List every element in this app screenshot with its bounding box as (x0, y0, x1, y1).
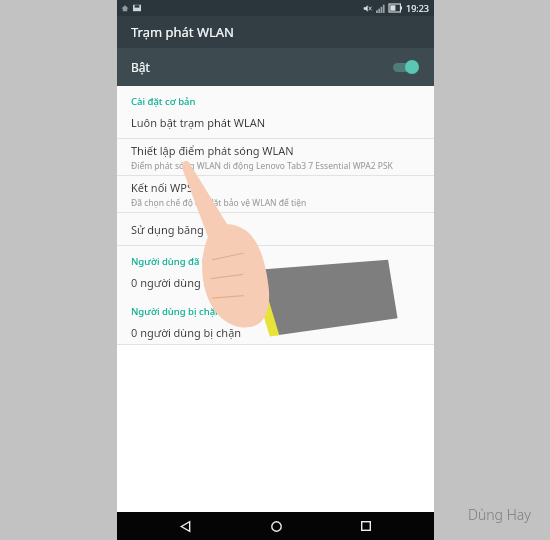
staticText: Trạm phát WLAN (131, 23, 234, 41)
staticText: Kết nối WPS (131, 180, 193, 195)
button[interactable]: Sử dụng băng thông (117, 213, 434, 245)
button[interactable]: 0 người dùng đã kết nối (117, 270, 434, 294)
other: Hotspot on/off switch (390, 59, 420, 75)
button[interactable]: Luôn bật trạm phát WLAN (117, 110, 434, 134)
button[interactable]: Back (163, 512, 207, 540)
button[interactable]: Recent apps (344, 512, 388, 540)
button[interactable]: Home (254, 512, 298, 540)
staticText: Thiết lập điểm phát sóng WLAN (131, 143, 294, 158)
staticText: Cài đặt cơ bản (131, 95, 434, 108)
button[interactable]: Thiết lập điểm phát sóng WLAN (117, 139, 434, 175)
staticText: Điểm phát sóng WLAN di động Lenovo Tab3 … (131, 160, 393, 172)
staticText: Người dùng bị chặn (131, 305, 434, 318)
staticText: Đã chọn chế độ cài đặt bảo vệ WLAN để ti… (131, 197, 307, 209)
staticText: 19:23 (406, 2, 430, 14)
staticText: Luôn bật trạm phát WLAN (131, 115, 266, 130)
staticText: Người dùng đã kết nối (131, 255, 434, 268)
staticText: Dùng Hay (468, 505, 531, 524)
staticText: 0 người dùng đã kết nối (131, 275, 255, 290)
staticText: 0 người dùng bị chặn (131, 325, 242, 340)
button[interactable]: Kết nối WPS (117, 176, 434, 212)
button[interactable]: Bật (117, 48, 434, 86)
staticText: Bật (131, 59, 150, 75)
button[interactable]: 0 người dùng bị chặn (117, 320, 434, 344)
staticText: Sử dụng băng thông (131, 222, 238, 237)
